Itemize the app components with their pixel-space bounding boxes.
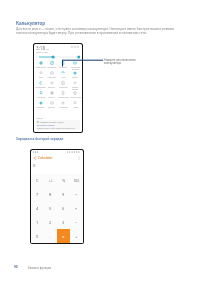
button[interactable]: 7 <box>31 187 44 201</box>
button[interactable]: Точка дост. <box>46 60 57 70</box>
button[interactable]: Тема <box>69 100 81 110</box>
staticText: Включить режим <box>37 124 55 127</box>
staticText: Wi-Fi <box>61 76 66 78</box>
staticText: кнопки калькулятора будет жерту. При уст… <box>16 31 147 35</box>
staticText: Блокировка <box>58 96 69 98</box>
staticText: Bluetooth <box>59 86 68 88</box>
staticText: Звук <box>39 76 43 78</box>
staticText: 0 <box>33 163 36 169</box>
button[interactable]: Яркость <box>46 80 57 90</box>
button[interactable]: C <box>31 174 44 187</box>
staticText: Calculator <box>38 156 53 160</box>
staticText: Данные <box>48 106 55 108</box>
button[interactable]: Хранение <box>57 100 69 110</box>
staticText: Базовые функции <box>28 266 52 270</box>
button[interactable]: Фонарик <box>57 60 69 70</box>
staticText: Калькулятор <box>16 20 46 26</box>
staticText: 7 <box>36 192 39 197</box>
staticText: Для всего иного — поиск, что нужно для в… <box>16 27 175 31</box>
staticText: Март 2, 2021 <box>36 51 49 54</box>
button[interactable]: Wi-Fi <box>57 70 69 80</box>
button[interactable]: Не беспок. <box>46 70 57 80</box>
staticText: калькулятора <box>104 61 122 65</box>
staticText: Нажмите для включения <box>104 58 136 62</box>
staticText: Нажмите здесь чтобы увидеть настройки се… <box>37 127 75 129</box>
staticText: − <box>75 220 78 225</box>
button[interactable]: DEL <box>70 174 83 187</box>
button[interactable]: 9 <box>57 187 70 201</box>
button[interactable]: = <box>57 229 70 243</box>
staticText: Тема <box>73 106 78 108</box>
staticText: 3:18 <box>36 45 46 51</box>
staticText: Хранение <box>59 106 68 108</box>
button[interactable]: 0 <box>31 229 44 243</box>
staticText: Не беспок. <box>47 76 57 78</box>
button[interactable]: 2 <box>44 215 57 229</box>
staticText: 5 <box>49 206 52 211</box>
staticText: = <box>62 234 65 239</box>
staticText: DEL <box>74 179 80 183</box>
staticText: Мобильный <box>35 66 46 68</box>
staticText: 1 <box>36 220 39 225</box>
staticText: 0 <box>36 234 39 239</box>
button[interactable]: + <box>70 229 83 243</box>
staticText: % <box>62 178 66 183</box>
button[interactable]: Back <box>33 156 37 160</box>
staticText: Сведения системы · сейчас <box>40 121 64 123</box>
staticText: × <box>75 206 78 211</box>
button[interactable]: Синхрон. <box>35 100 46 110</box>
button[interactable]: Автоповорот <box>35 80 46 90</box>
button[interactable]: % <box>57 174 70 187</box>
staticText: 8 <box>49 192 52 197</box>
staticText: Уведом. <box>36 117 44 119</box>
button[interactable]: − <box>70 215 83 229</box>
button[interactable]: 5 <box>44 201 57 215</box>
staticText: Локация <box>37 96 45 98</box>
staticText: +/- <box>49 179 53 183</box>
staticText: Автоповорот <box>35 86 46 90</box>
button[interactable]: 3 <box>57 215 70 229</box>
staticText: 3 <box>62 220 65 225</box>
button[interactable]: Звук <box>35 70 46 80</box>
button[interactable]: 4 <box>31 201 44 215</box>
button[interactable]: 1 <box>31 215 44 229</box>
staticText: Режим <box>72 76 78 78</box>
staticText: Зарядка на быстрой зарядке <box>16 137 64 141</box>
button[interactable]: Мобильный <box>35 60 46 70</box>
staticText: ÷ <box>75 192 78 197</box>
button[interactable]: Ночной свет <box>69 90 81 100</box>
staticText: 6 <box>62 206 65 211</box>
staticText: Режим полёта <box>69 86 81 90</box>
staticText: 2 <box>49 220 52 225</box>
button[interactable]: 6 <box>57 201 70 215</box>
staticText: 4 <box>36 206 39 211</box>
button[interactable]: × <box>70 201 83 215</box>
staticText: Ночной свет <box>70 96 81 98</box>
staticText: Точка дост. <box>47 66 57 68</box>
button[interactable]: +/- <box>44 174 57 187</box>
staticText: Трансл. <box>48 96 55 98</box>
staticText: Синхрон. <box>36 106 45 108</box>
staticText: Экономия батареи <box>71 66 80 70</box>
staticText: Фонарик <box>59 66 67 68</box>
staticText: + <box>75 234 78 239</box>
staticText: C <box>36 178 39 183</box>
button[interactable]: Данные <box>46 100 57 110</box>
button[interactable]: More options <box>77 156 81 160</box>
staticText: 90 <box>14 265 18 269</box>
staticText: 9 <box>62 192 65 197</box>
button[interactable]: Блокировка <box>57 90 69 100</box>
button[interactable]: Bluetooth <box>57 80 69 90</box>
staticText: Яркость <box>48 86 55 88</box>
button[interactable]: Трансл. <box>46 90 57 100</box>
button[interactable]: Режим полёта <box>69 80 81 90</box>
button[interactable]: Локация <box>35 90 46 100</box>
button[interactable]: Экономия батареи <box>69 60 81 70</box>
button[interactable]: ÷ <box>70 187 83 201</box>
button[interactable]: 8 <box>44 187 57 201</box>
staticText: PM <box>46 48 50 51</box>
button[interactable]: Режим <box>69 70 81 80</box>
staticText: . <box>50 234 52 239</box>
